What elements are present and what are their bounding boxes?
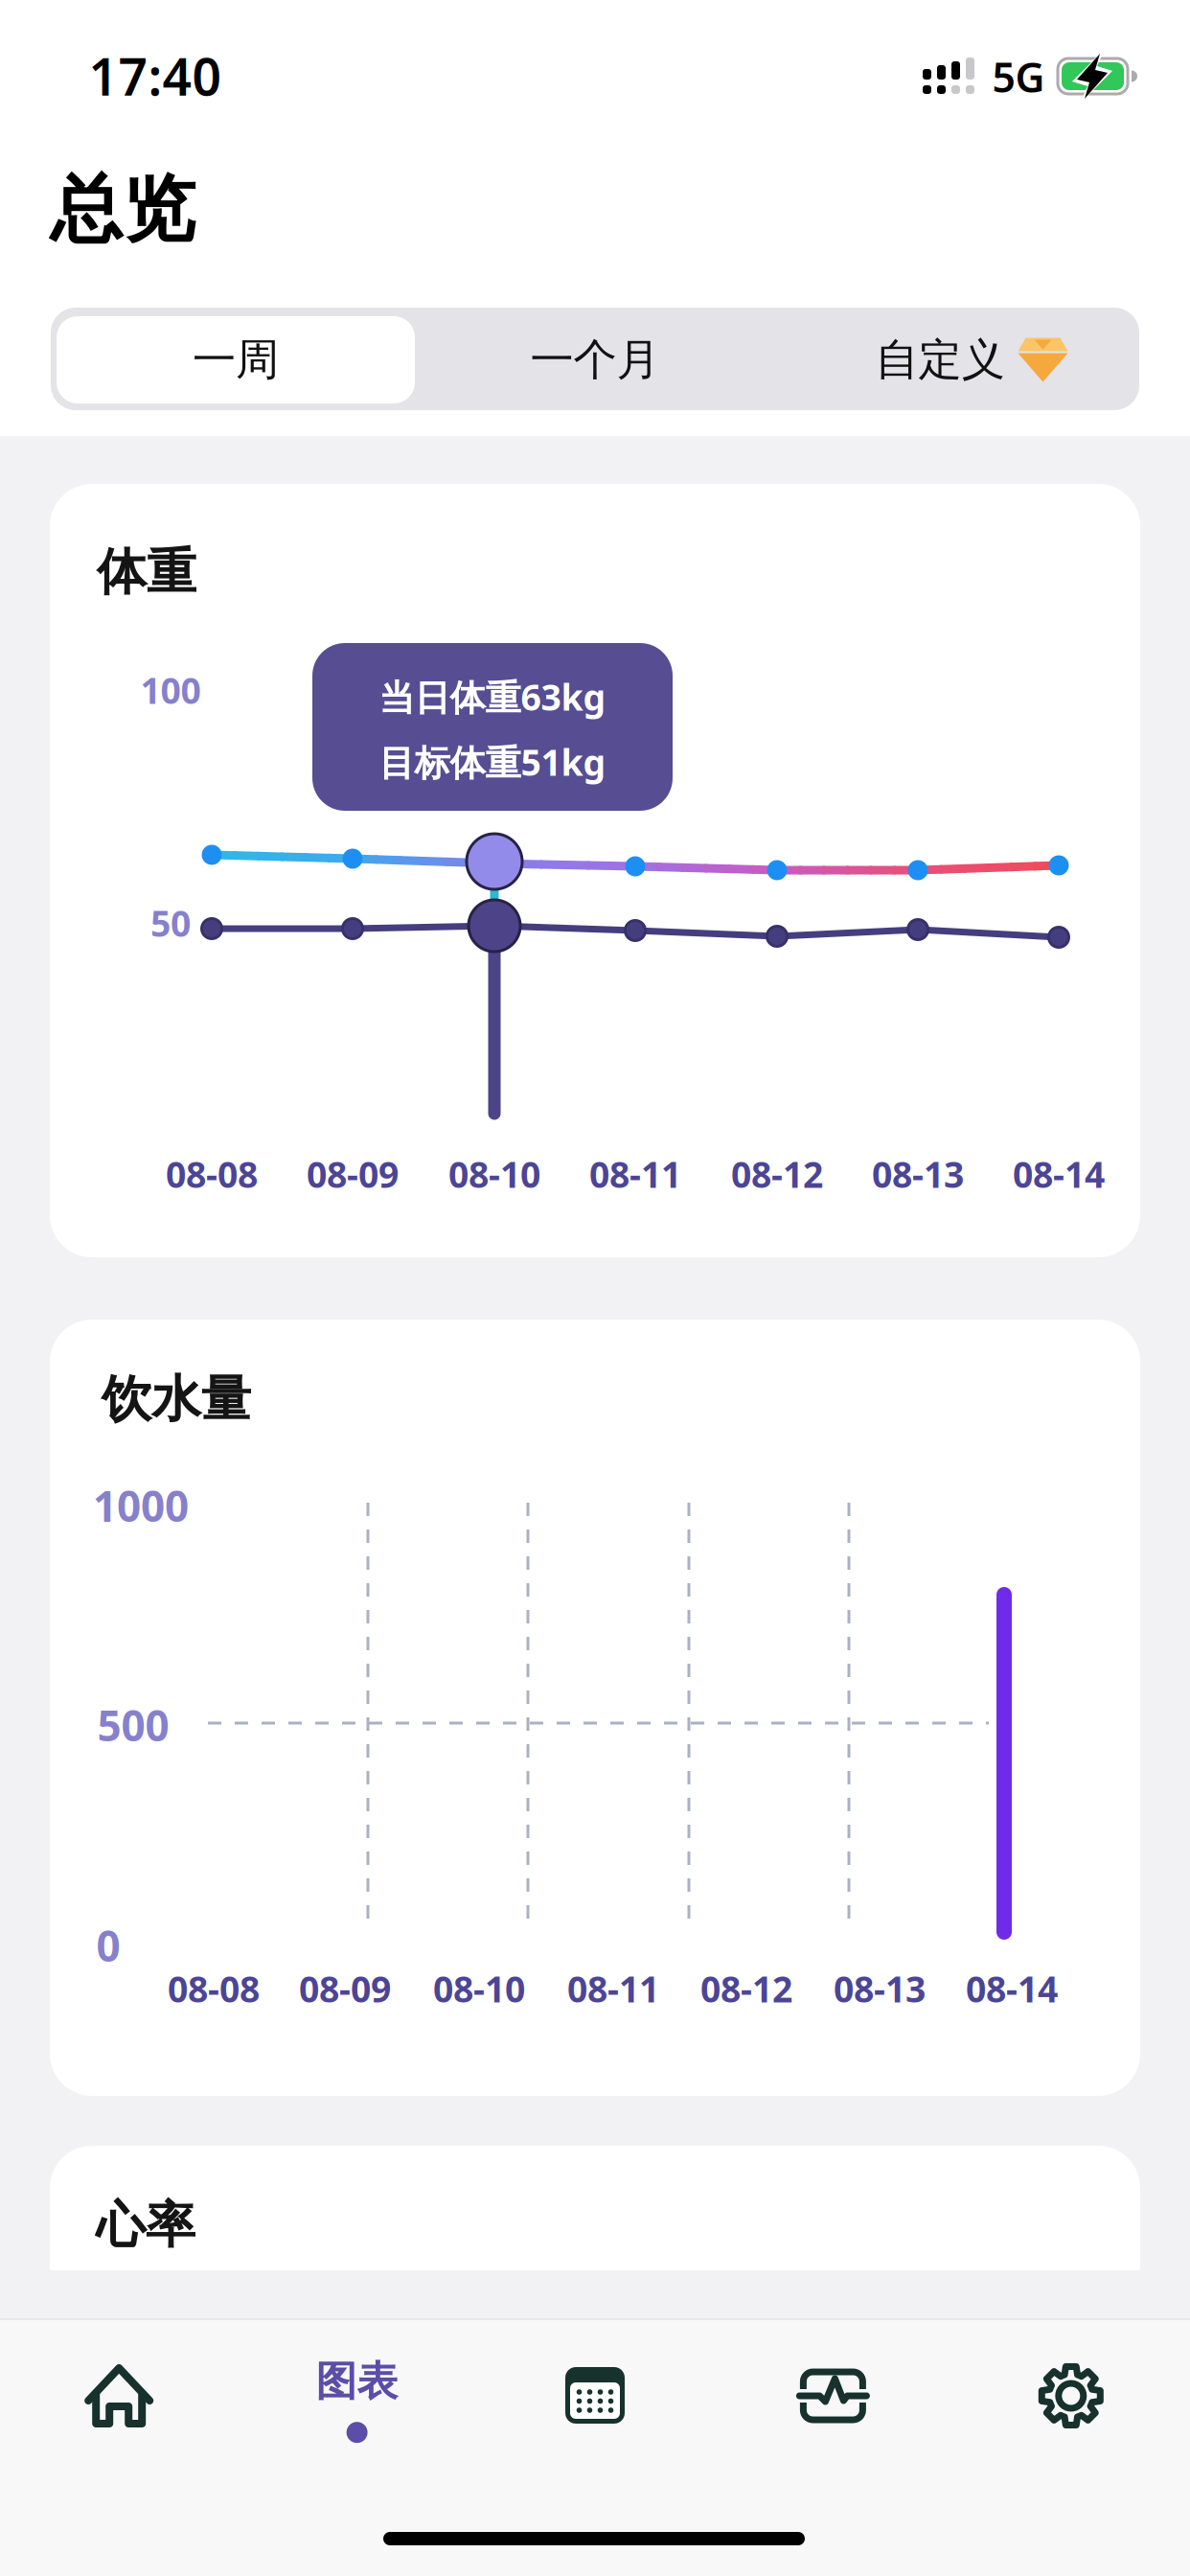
staticText: 一周	[193, 333, 279, 387]
staticText: 08-14	[966, 1965, 1058, 2012]
staticText: 08-10	[433, 1965, 525, 2012]
staticText: 50	[150, 899, 191, 947]
button[interactable]: 日历	[480, 2324, 710, 2468]
staticText: 500	[97, 1697, 169, 1753]
staticText: 08-14	[1013, 1150, 1105, 1198]
staticText: 08-08	[168, 1965, 260, 2012]
staticText: 5G	[992, 50, 1045, 104]
staticText: 饮水量	[102, 1369, 251, 1430]
staticText: 08-10	[448, 1150, 540, 1198]
button[interactable]: 图表	[242, 2328, 472, 2472]
button[interactable]: 一周	[57, 316, 415, 403]
staticText: 08-12	[700, 1965, 792, 2012]
button[interactable]: 自定义	[792, 316, 1151, 403]
staticText: 17:40	[89, 42, 222, 110]
staticText: 目标体重51kg	[379, 738, 606, 786]
staticText: 100	[140, 666, 201, 714]
button[interactable]: 一个月	[416, 316, 774, 403]
staticText: 08-13	[872, 1150, 964, 1198]
staticText: 08-08	[166, 1150, 258, 1198]
staticText: 一个月	[530, 333, 660, 387]
staticText: 当日体重63kg	[379, 673, 606, 720]
staticText: 08-11	[567, 1965, 659, 2012]
staticText: 总览	[50, 165, 195, 255]
staticText: 自定义	[875, 333, 1005, 387]
staticText: 08-13	[834, 1965, 926, 2012]
button[interactable]: 记录	[718, 2324, 948, 2468]
staticText: 心率	[96, 2195, 195, 2256]
staticText: 08-11	[589, 1150, 681, 1198]
staticText: 08-09	[307, 1150, 399, 1198]
staticText: 体重	[97, 542, 196, 603]
staticText: 08-09	[299, 1965, 391, 2012]
button[interactable]: 设置	[956, 2324, 1186, 2468]
staticText: 0	[96, 1917, 120, 1973]
staticText: 图表	[316, 2356, 398, 2407]
staticText: 1000	[93, 1478, 189, 1534]
staticText: 08-12	[731, 1150, 823, 1198]
button[interactable]: 首页	[4, 2324, 234, 2468]
